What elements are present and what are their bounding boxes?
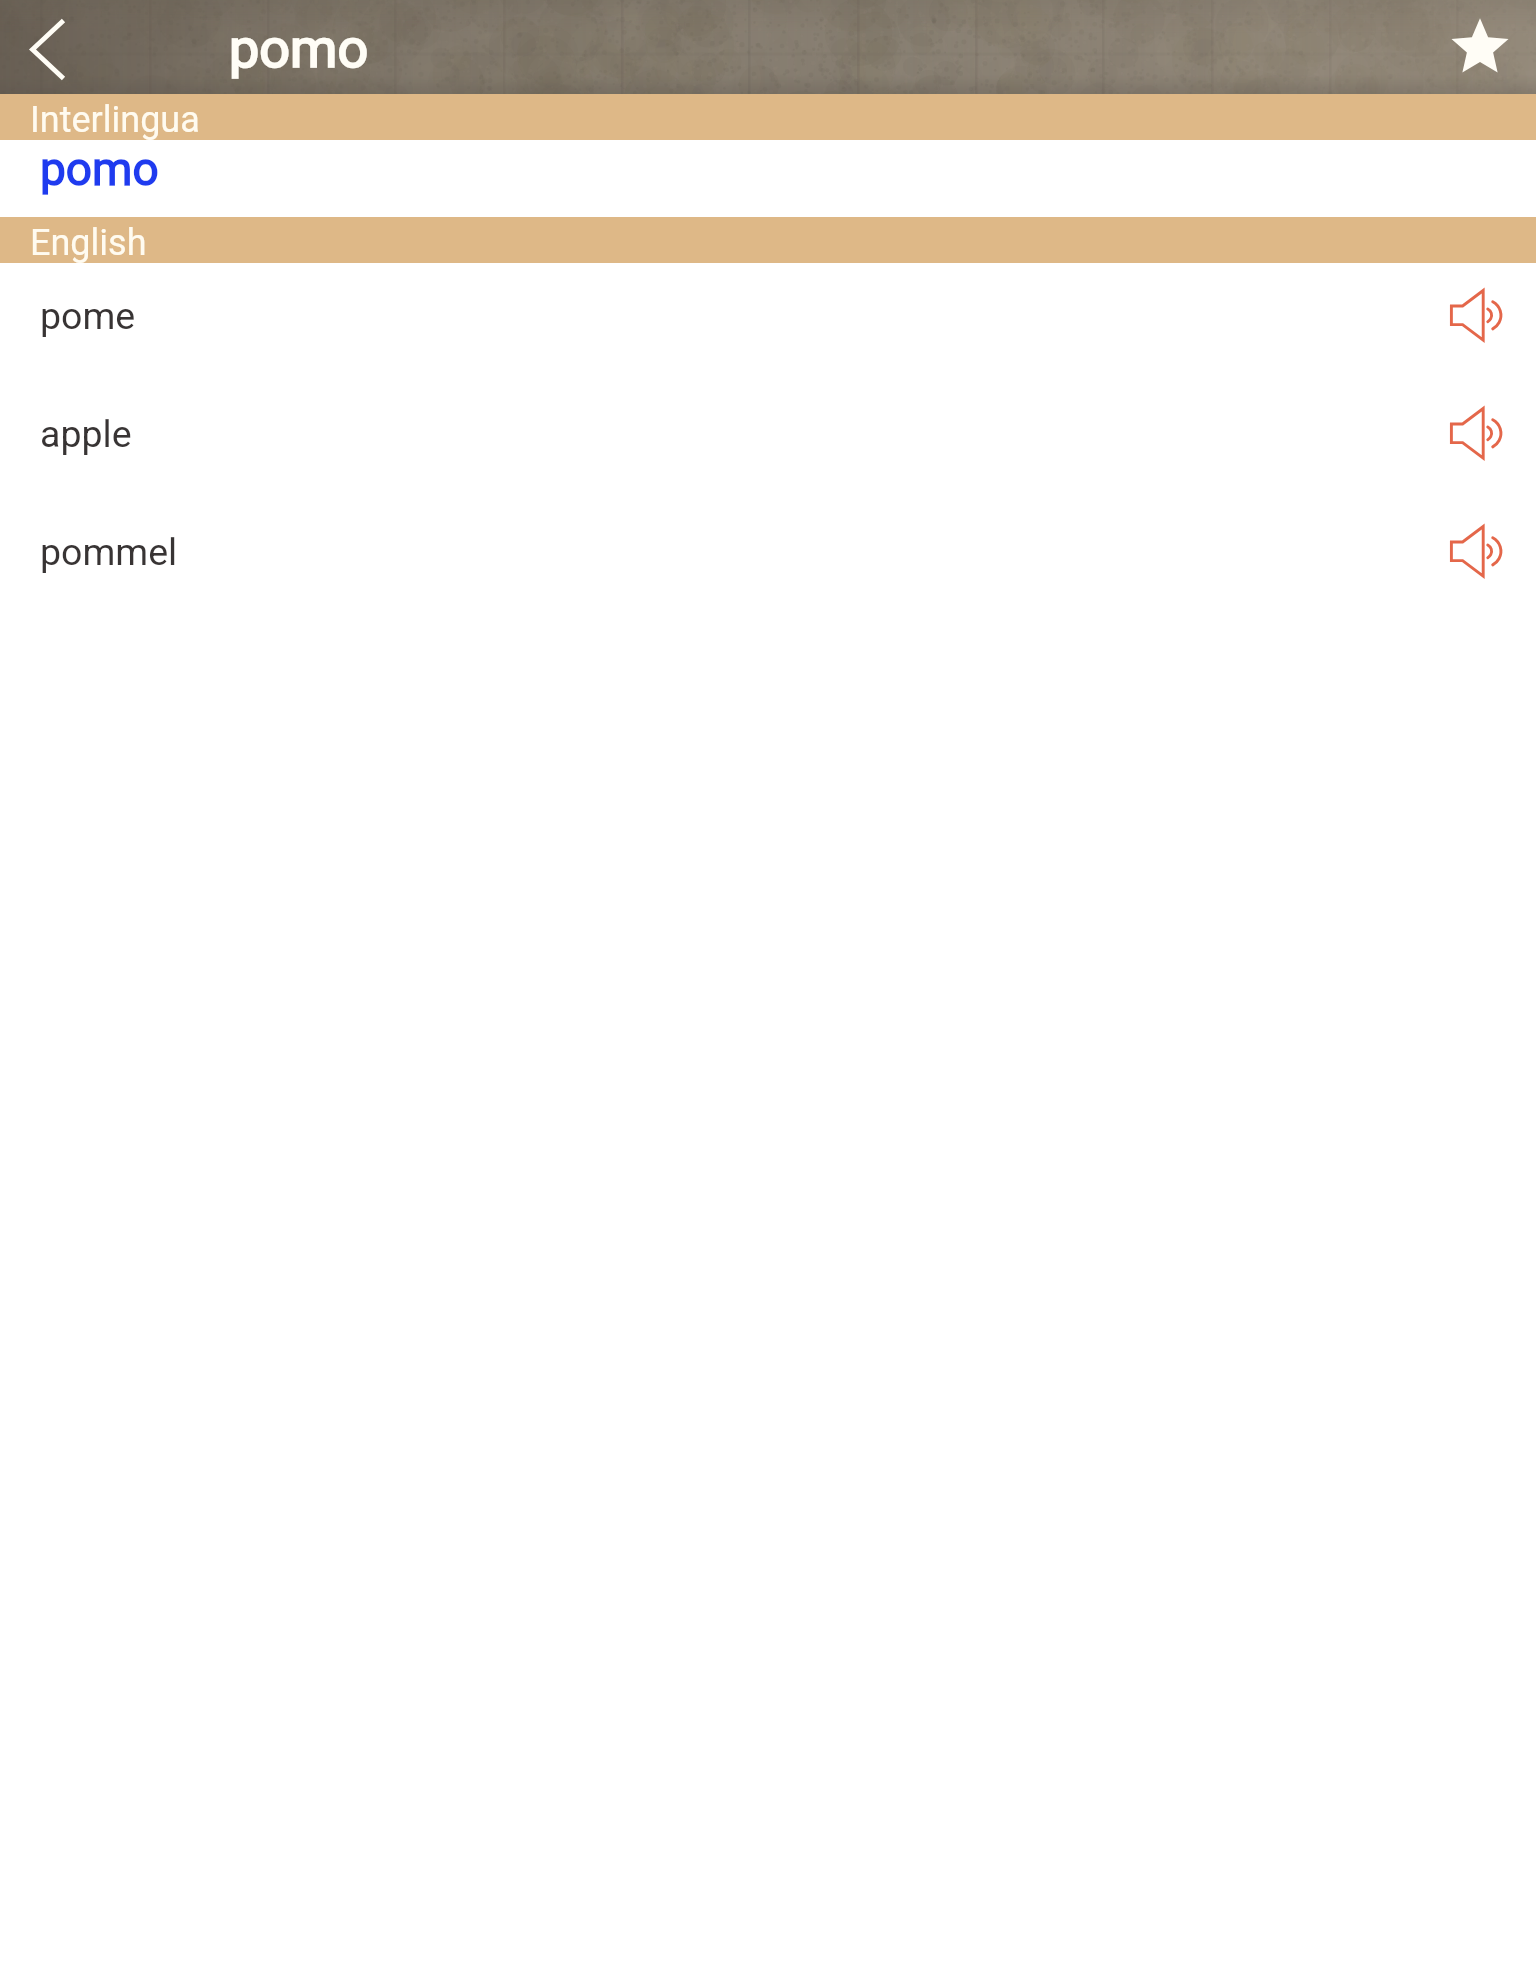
button[interactable]: Back: [0, 0, 96, 94]
button[interactable]: Play pronunciation of pommel: [1426, 499, 1536, 617]
staticText: apple: [40, 412, 132, 456]
button[interactable]: pome: [0, 263, 1536, 381]
staticText: Interlingua: [30, 99, 200, 141]
staticText: pomo: [229, 17, 369, 80]
button[interactable]: pomo: [0, 140, 1536, 217]
staticText: pommel: [40, 530, 178, 574]
staticText: English: [30, 222, 147, 264]
button[interactable]: Favorite: [1436, 0, 1536, 94]
button[interactable]: apple: [0, 381, 1536, 499]
staticText: pomo: [40, 142, 159, 196]
button[interactable]: pommel: [0, 499, 1536, 617]
button[interactable]: Play pronunciation of apple: [1426, 381, 1536, 499]
button[interactable]: Play pronunciation of pome: [1426, 263, 1536, 381]
staticText: pome: [40, 294, 136, 338]
